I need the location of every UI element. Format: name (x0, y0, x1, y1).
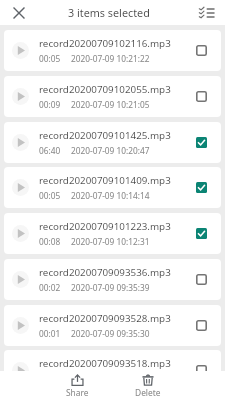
button[interactable]: Select item (186, 219, 216, 249)
staticText: record20200709093518.mp3 (39, 357, 171, 370)
button[interactable]: Select item (186, 356, 216, 386)
staticText: 00:02 (39, 282, 61, 293)
staticText: record20200709102116.mp3 (39, 37, 171, 50)
staticText: 2020-07-09 10:20:47 (71, 145, 150, 156)
staticText: record20200709093536.mp3 (39, 266, 171, 279)
staticText: Share (66, 387, 89, 398)
button[interactable]: record20200709101223.mp3 (4, 213, 221, 254)
button[interactable]: Select item (186, 173, 216, 203)
button[interactable]: record20200709101425.mp3 (4, 122, 221, 163)
button[interactable]: Select all (196, 2, 217, 23)
staticText: 00:08 (39, 236, 61, 247)
staticText: 00:01 (39, 328, 61, 339)
staticText: 2020-07-09 10:12:31 (71, 236, 150, 247)
staticText: 3 items selected (68, 5, 150, 20)
button[interactable]: record20200709093536.mp3 (4, 259, 221, 300)
staticText: record20200709093528.mp3 (39, 312, 171, 325)
staticText: record20200709101425.mp3 (39, 129, 171, 142)
staticText: record20200709101223.mp3 (39, 220, 171, 233)
button[interactable]: record20200709101409.mp3 (4, 167, 221, 208)
staticText: record20200709101409.mp3 (39, 174, 171, 187)
button[interactable]: Select item (186, 36, 216, 66)
button[interactable]: Select item (186, 265, 216, 295)
button[interactable]: record20200709102055.mp3 (4, 76, 221, 117)
staticText: 00:05 (39, 190, 61, 201)
staticText: record20200709102055.mp3 (39, 83, 171, 96)
staticText: 2020-07-09 10:21:05 (71, 99, 150, 110)
staticText: Delete (135, 387, 161, 398)
button[interactable]: Close (8, 2, 29, 23)
staticText: 2020-07-09 09:35:20 (71, 373, 150, 384)
button[interactable]: record20200709102116.mp3 (4, 30, 221, 71)
staticText: 2020-07-09 09:35:30 (71, 328, 150, 339)
button[interactable]: Select item (186, 128, 216, 158)
button[interactable]: record20200709093528.mp3 (4, 305, 221, 346)
button[interactable]: Select item (186, 82, 216, 112)
button[interactable]: record20200709093518.mp3 (4, 350, 221, 391)
staticText: 06:40 (39, 145, 61, 156)
staticText: 2020-07-09 10:14:14 (71, 190, 150, 201)
staticText: 2020-07-09 09:35:39 (71, 282, 150, 293)
staticText: 2020-07-09 10:21:22 (71, 53, 150, 64)
button[interactable]: Share (42, 371, 112, 400)
staticText: 00:05 (39, 53, 61, 64)
button[interactable]: Delete (112, 371, 183, 400)
button[interactable]: Select item (186, 311, 216, 341)
staticText: 00:09 (39, 99, 61, 110)
